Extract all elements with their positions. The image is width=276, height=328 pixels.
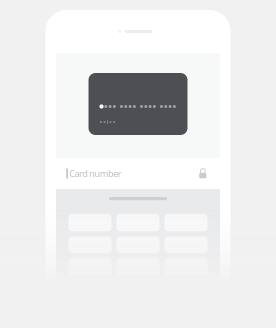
staticText: Card number [69, 167, 122, 180]
button[interactable]: Card number [56, 158, 220, 189]
